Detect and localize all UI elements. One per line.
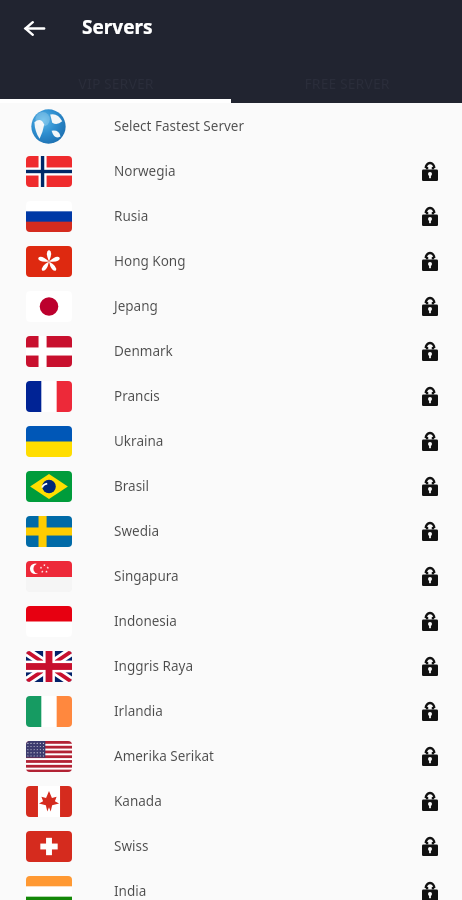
other: Locked server	[422, 161, 438, 181]
staticText: Jepang	[114, 297, 158, 315]
staticText: Select Fastest Server	[114, 117, 245, 135]
other: Locked server	[422, 656, 438, 676]
other: Locked server	[422, 746, 438, 766]
staticText: Rusia	[114, 207, 149, 225]
button[interactable]: Hong Kong	[0, 238, 462, 283]
staticText: FREE SERVER	[304, 74, 390, 93]
button[interactable]: Norwegia	[0, 148, 462, 193]
button[interactable]: Select Fastest Server	[0, 103, 462, 148]
button[interactable]: Denmark	[0, 328, 462, 373]
button[interactable]: Indonesia	[0, 598, 462, 643]
staticText: Denmark	[114, 342, 173, 360]
staticText: India	[114, 882, 147, 900]
button[interactable]: Rusia	[0, 193, 462, 238]
button[interactable]: Prancis	[0, 373, 462, 418]
staticText: Brasil	[114, 477, 150, 495]
other: Locked server	[422, 521, 438, 541]
other: Locked server	[422, 251, 438, 271]
button[interactable]: Ukraina	[0, 418, 462, 463]
button[interactable]: Amerika Serikat	[0, 733, 462, 778]
staticText: Servers	[82, 14, 153, 40]
other: Locked server	[422, 296, 438, 316]
button[interactable]: Jepang	[0, 283, 462, 328]
button[interactable]: Brasil	[0, 463, 462, 508]
other: Locked server	[422, 386, 438, 406]
button[interactable]: Back	[14, 8, 54, 48]
other: Locked server	[422, 791, 438, 811]
other: Locked server	[422, 701, 438, 721]
staticText: Inggris Raya	[114, 657, 193, 675]
other: Locked server	[422, 566, 438, 586]
button[interactable]: India	[0, 868, 462, 900]
other: Locked server	[422, 341, 438, 361]
other: Locked server	[422, 881, 438, 900]
other: Locked server	[422, 206, 438, 226]
button[interactable]: Singapura	[0, 553, 462, 598]
other: Locked server	[422, 611, 438, 631]
button[interactable]: Irlandia	[0, 688, 462, 733]
staticText: Singapura	[114, 567, 179, 585]
staticText: Amerika Serikat	[114, 747, 214, 765]
staticText: Prancis	[114, 387, 160, 405]
staticText: Kanada	[114, 792, 162, 810]
staticText: Swiss	[114, 837, 149, 855]
staticText: Irlandia	[114, 702, 163, 720]
staticText: Ukraina	[114, 432, 164, 450]
button[interactable]: Swiss	[0, 823, 462, 868]
staticText: Swedia	[114, 522, 159, 540]
button[interactable]: Inggris Raya	[0, 643, 462, 688]
staticText: VIP SERVER	[78, 74, 154, 93]
button[interactable]: Swedia	[0, 508, 462, 553]
other: Locked server	[422, 476, 438, 496]
other: Locked server	[422, 431, 438, 451]
other: Locked server	[422, 836, 438, 856]
button[interactable]: Kanada	[0, 778, 462, 823]
staticText: Indonesia	[114, 612, 177, 630]
staticText: Hong Kong	[114, 252, 186, 270]
button[interactable]: VIP SERVER	[0, 63, 231, 103]
staticText: Norwegia	[114, 162, 176, 180]
